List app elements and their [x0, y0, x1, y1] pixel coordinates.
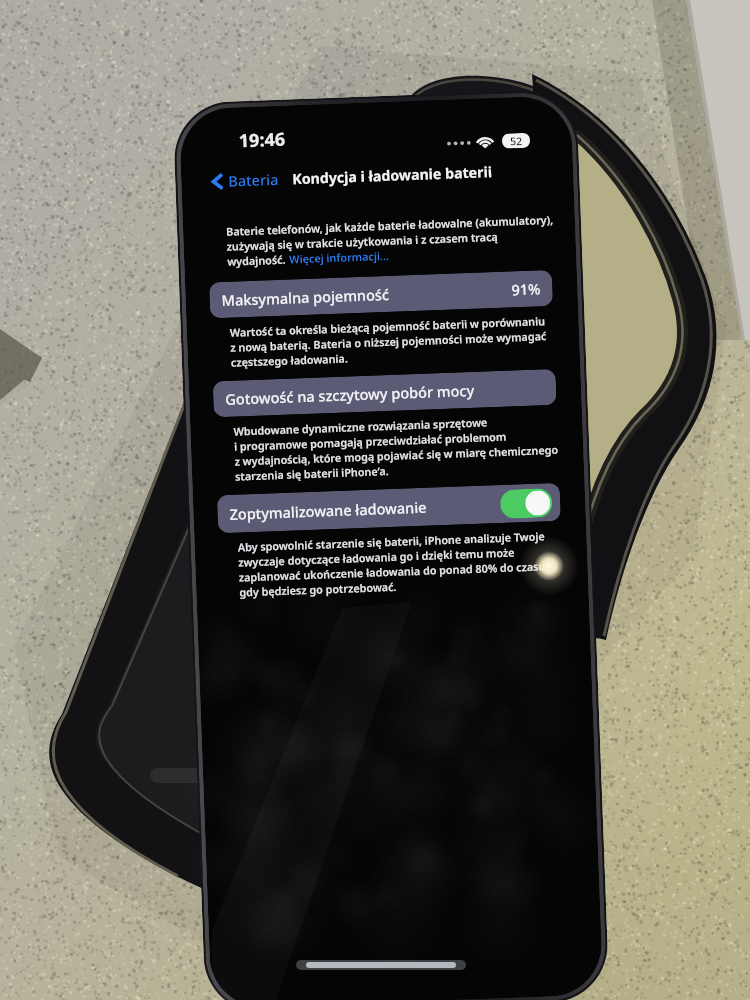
staticText: z wydajnością, które mogą pojawiać się w… [234, 442, 559, 469]
button[interactable]: Gotowość na szczytowy pobór mocy [213, 369, 557, 417]
staticText: Aby spowolnić starzenie się baterii, iPh… [237, 528, 546, 555]
staticText: zużywają się w trakcie użytkowania i z c… [226, 229, 499, 254]
staticText: 19:46 [238, 127, 286, 153]
staticText: z nową baterią. Bateria o niższej pojemn… [230, 328, 547, 355]
button[interactable]: Przełącznik zoptymalizowanego ładowania [500, 488, 553, 519]
staticText: 52 [510, 134, 523, 148]
button[interactable]: Bateria [212, 166, 279, 194]
staticText: zaplanować ukończenie ładowania do ponad… [238, 558, 549, 584]
staticText: Wbudowane dynamiczne rozwiązania sprzęto… [233, 414, 488, 439]
staticText: Baterie telefonów, jak każde baterie ład… [226, 212, 554, 239]
button[interactable]: Zoptymalizowane ładowanie [217, 483, 561, 533]
button[interactable]: Maksymalna pojemność [209, 270, 553, 318]
staticText: Bateria [228, 169, 279, 191]
staticText: Zoptymalizowane ładowanie [229, 497, 428, 524]
staticText: częstszego ładowania. [231, 350, 348, 370]
staticText: Wartość ta określa bieżącą pojemność bat… [230, 313, 546, 340]
button[interactable]: Więcej informacji... [274, 248, 374, 267]
staticText: i programowe pomagają przeciwdziałać pro… [234, 429, 507, 454]
staticText: gdy będziesz go potrzebować. [239, 579, 397, 600]
staticText: 91% [511, 278, 541, 299]
staticText: zwyczaje dotyczące ładowania go i dzięki… [238, 544, 515, 570]
staticText: starzenia się baterii iPhone’a. [235, 463, 389, 484]
staticText: Kondycja i ładowanie baterii [292, 162, 492, 188]
staticText: Gotowość na szczytowy pobór mocy [225, 380, 475, 409]
staticText: wydajność. [227, 251, 289, 269]
staticText: Maksymalna pojemność [221, 284, 390, 310]
